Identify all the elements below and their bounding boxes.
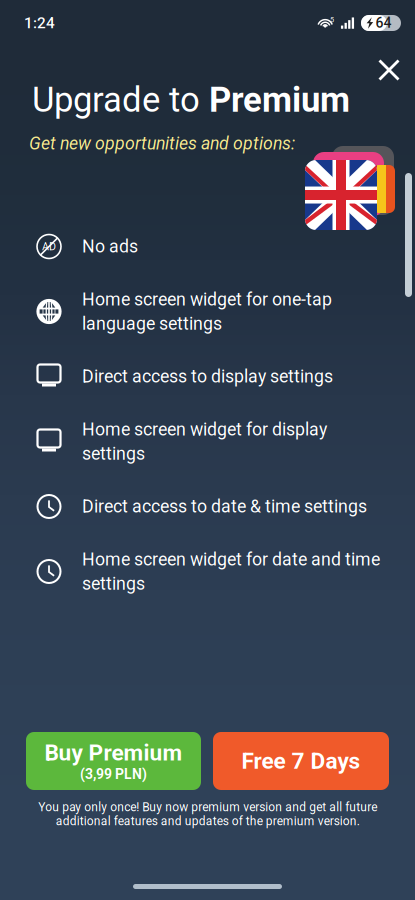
- staticText: Upgrade to Premium: [32, 80, 350, 120]
- staticText: Buy Premium: [44, 739, 182, 766]
- button[interactable]: Direct access to date & time settings: [0, 474, 415, 539]
- staticText: 5: [330, 15, 334, 24]
- staticText: No ads: [82, 236, 138, 257]
- staticText: (3,99 PLN): [80, 766, 147, 782]
- button[interactable]: Close: [367, 48, 411, 92]
- staticText: You pay only once! Buy now premium versi…: [38, 800, 377, 828]
- button[interactable]: Free 7 Days: [213, 732, 389, 790]
- button[interactable]: Home screen widget for display settings: [0, 409, 415, 474]
- staticText: Direct access to date & time settings: [82, 496, 367, 517]
- button[interactable]: Direct access to display settings: [0, 344, 415, 409]
- staticText: Home screen widget for date and time set…: [82, 549, 380, 594]
- staticText: Direct access to display settings: [82, 366, 333, 387]
- button[interactable]: Home screen widget for date and time set…: [0, 539, 415, 604]
- staticText: AD: [42, 240, 56, 253]
- staticText: 64: [375, 15, 391, 31]
- button[interactable]: Home screen widget for one-tap language …: [0, 279, 415, 344]
- staticText: Home screen widget for display settings: [82, 419, 327, 464]
- staticText: 1:24: [24, 14, 55, 32]
- staticText: Free 7 Days: [241, 748, 360, 774]
- staticText: Home screen widget for one-tap language …: [82, 289, 332, 334]
- button[interactable]: AD: [0, 214, 415, 279]
- button[interactable]: Buy Premium: [26, 732, 201, 790]
- staticText: Get new opportunities and options:: [29, 133, 295, 154]
